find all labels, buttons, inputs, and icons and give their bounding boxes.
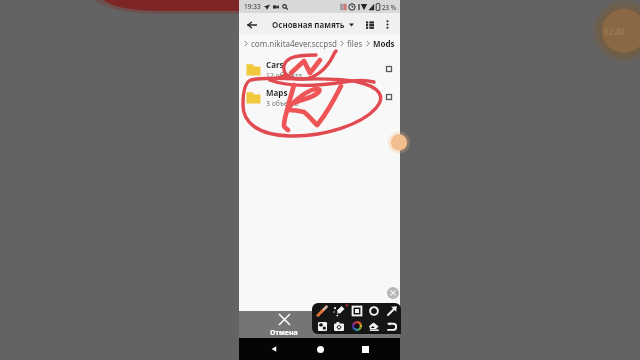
staticText: 19:33 — [244, 2, 261, 11]
button[interactable]: Основная память — [272, 19, 354, 30]
button[interactable]: Switch view — [362, 17, 377, 32]
button[interactable]: Close toolbar — [387, 287, 399, 299]
button[interactable]: Eraser — [366, 318, 382, 334]
staticText: Mods — [373, 38, 395, 49]
button[interactable]: Circle — [366, 303, 382, 318]
button[interactable]: Select Cars — [383, 63, 395, 75]
staticText: com.nikita4ever.sccpsd — [251, 38, 337, 49]
button[interactable]: Home — [310, 339, 330, 359]
button[interactable]: More options — [380, 17, 395, 32]
button[interactable]: Back — [244, 17, 259, 32]
button[interactable]: Cars — [239, 55, 400, 83]
button[interactable]: Colour — [349, 318, 365, 334]
button[interactable]: Undo — [384, 318, 400, 334]
button[interactable]: Screenshot — [331, 318, 347, 334]
button[interactable]: Select Maps — [383, 91, 395, 103]
button[interactable]: Отмена — [239, 311, 400, 338]
staticText: 12 объекта — [266, 71, 303, 80]
staticText: Maps — [266, 87, 288, 98]
staticText: 23 % — [382, 3, 396, 11]
button[interactable]: Recent apps — [355, 339, 375, 359]
staticText: 3 объекта — [266, 99, 299, 108]
button[interactable]: Arrow — [384, 303, 400, 318]
button[interactable]: Back — [264, 339, 284, 359]
button[interactable]: Brush — [314, 303, 330, 318]
button[interactable]: Maps — [239, 83, 400, 111]
staticText: Отмена — [270, 328, 298, 338]
staticText: 02:40 — [604, 26, 625, 37]
button[interactable]: Rectangle — [349, 303, 365, 318]
staticText: Cars — [266, 59, 284, 70]
button[interactable]: Marker — [331, 303, 347, 318]
staticText: Основная память — [272, 19, 345, 30]
staticText: files — [347, 38, 363, 49]
button[interactable]: Mosaic — [314, 318, 330, 334]
